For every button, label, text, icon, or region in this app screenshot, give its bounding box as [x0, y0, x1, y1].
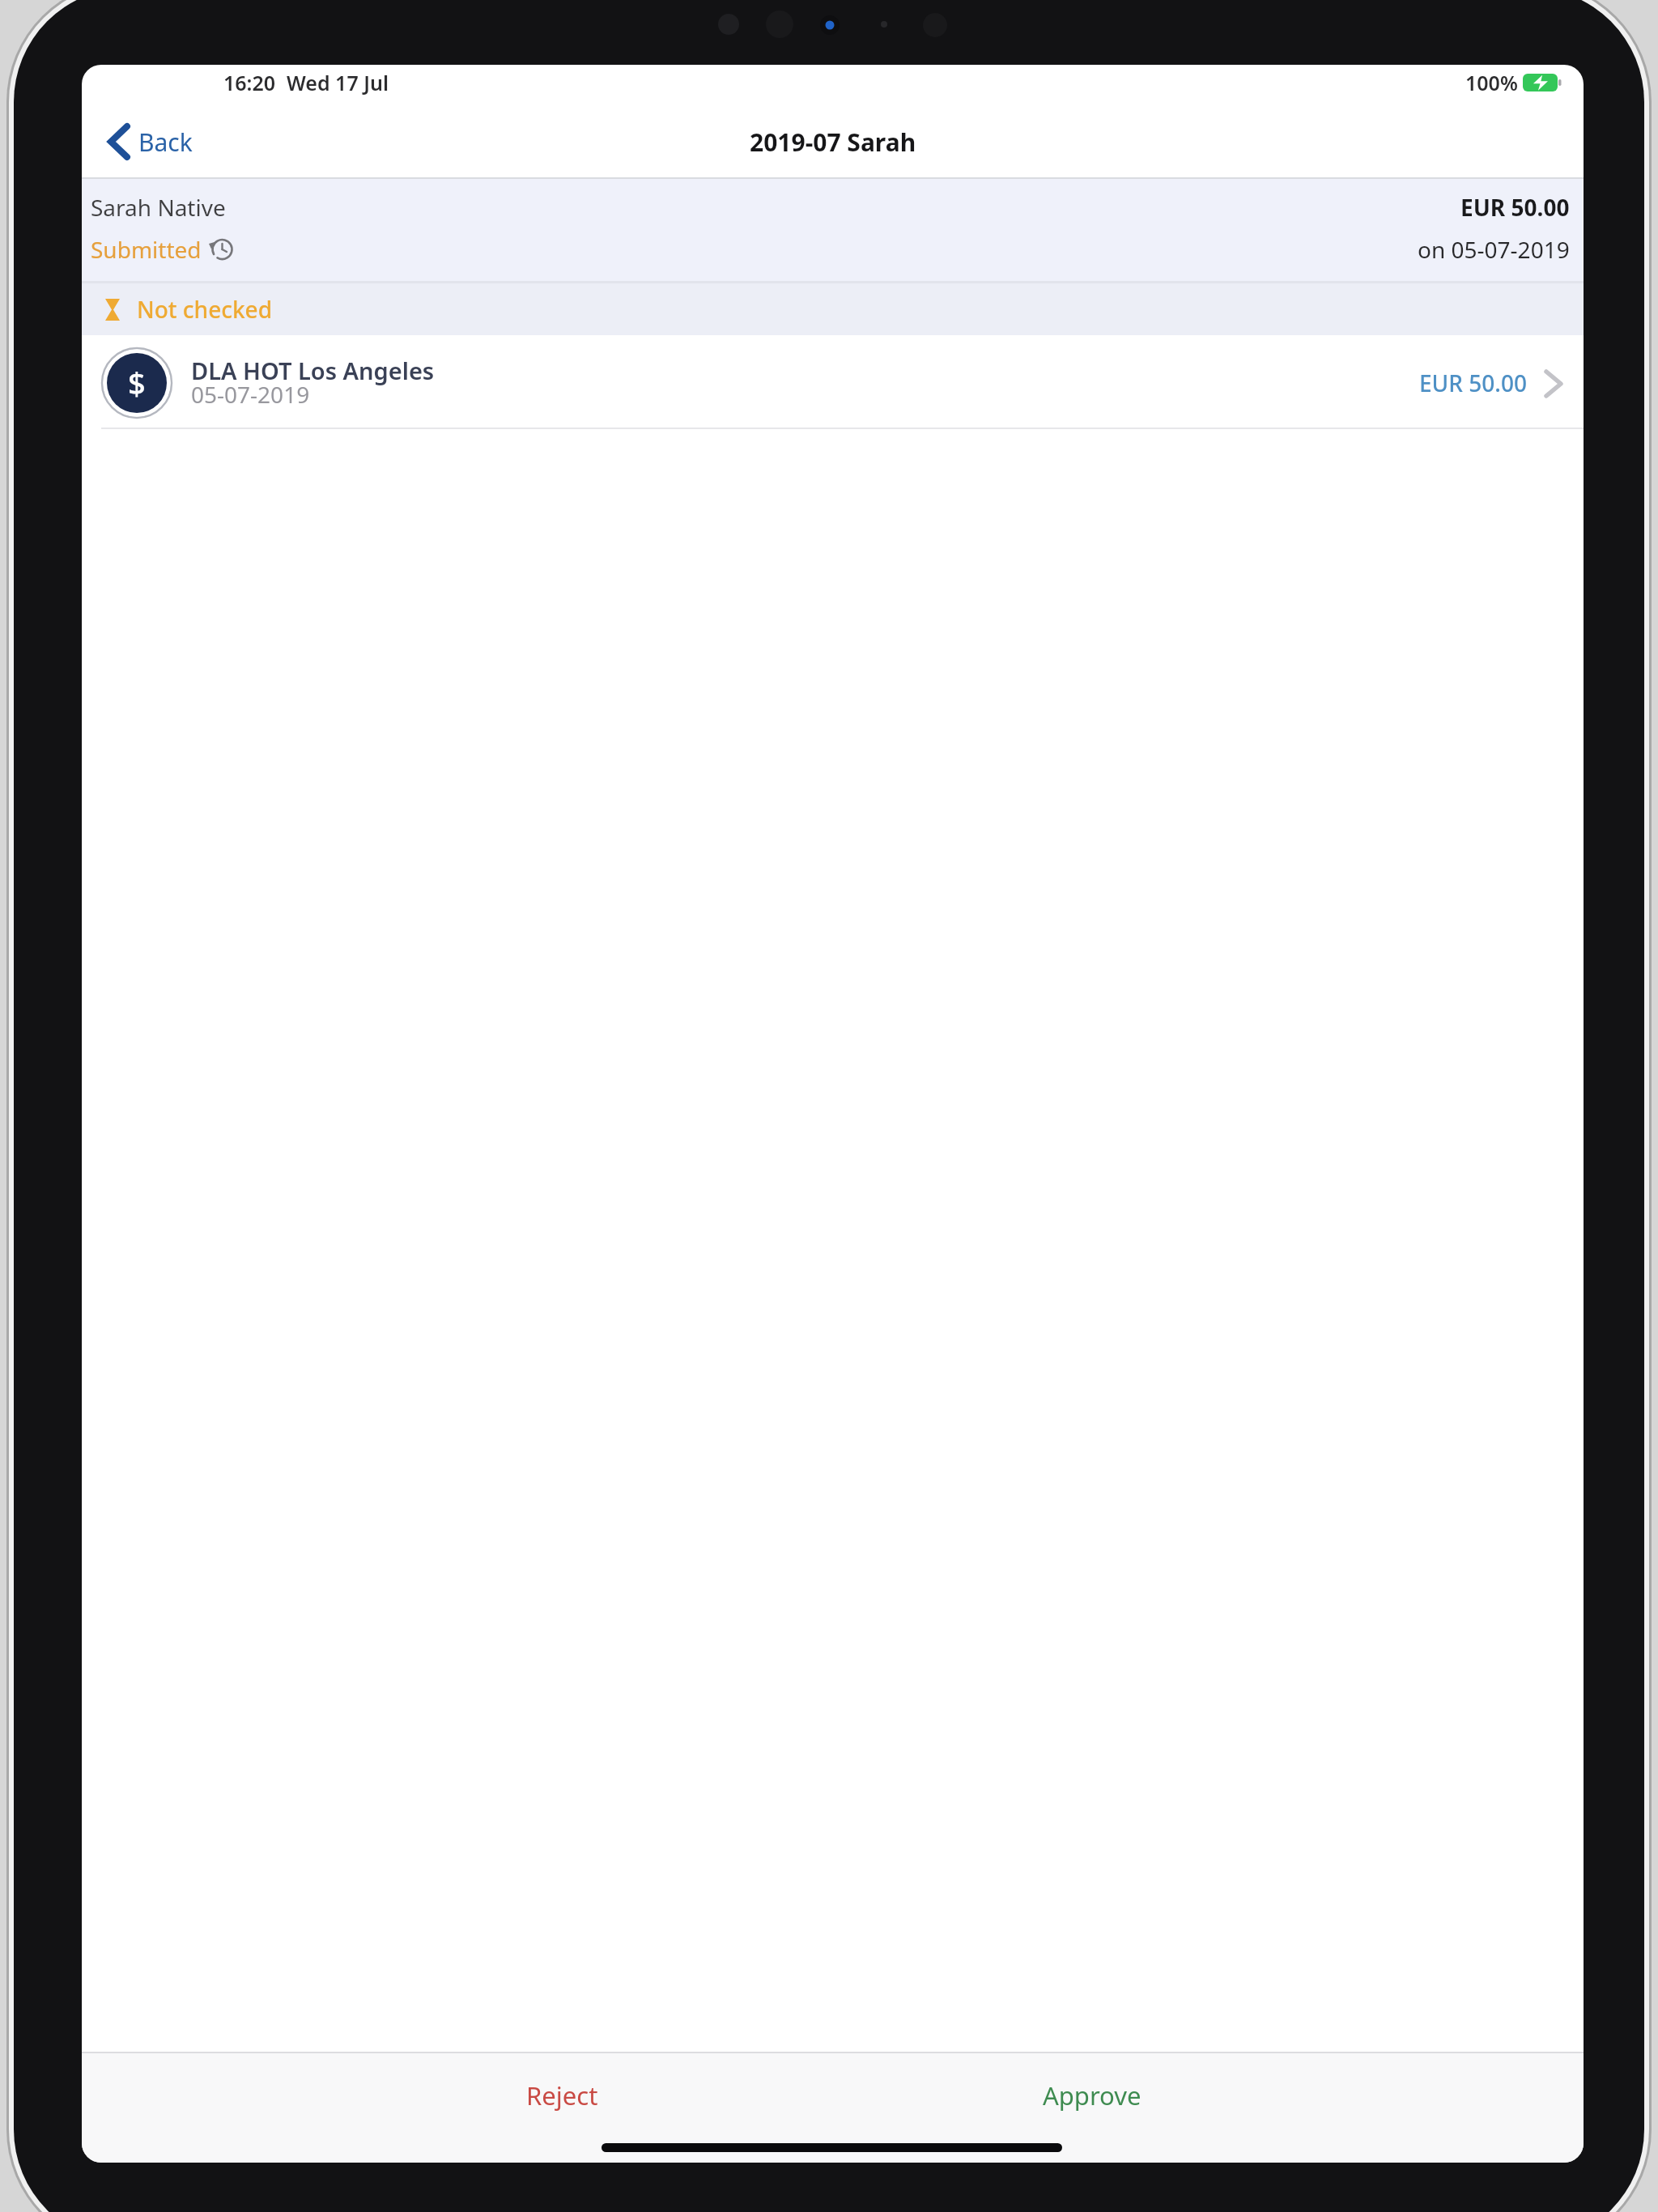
staticText: Not checked: [137, 294, 273, 325]
staticText: $: [128, 362, 146, 404]
button[interactable]: [82, 335, 1584, 429]
staticText: Reject: [526, 2078, 598, 2112]
button[interactable]: Reject: [440, 2065, 683, 2126]
staticText: EUR 50.00: [1460, 192, 1570, 223]
staticText: 100%: [1465, 69, 1518, 96]
staticText: on 05-07-2019: [1418, 234, 1570, 265]
staticText: 16:20: [223, 69, 276, 96]
staticText: Sarah Native: [91, 192, 226, 223]
staticText: Approve: [1043, 2078, 1141, 2112]
staticText: Back: [138, 125, 193, 159]
staticText: Submitted: [91, 234, 202, 265]
button[interactable]: [98, 113, 292, 170]
button[interactable]: Approve: [971, 2065, 1214, 2126]
staticText: EUR 50.00: [1419, 368, 1527, 398]
staticText: 05-07-2019: [191, 379, 310, 410]
staticText: DLA HOT Los Angeles: [191, 355, 435, 386]
staticText: Wed 17 Jul: [287, 69, 389, 96]
staticText: 2019-07 Sarah: [750, 125, 916, 158]
